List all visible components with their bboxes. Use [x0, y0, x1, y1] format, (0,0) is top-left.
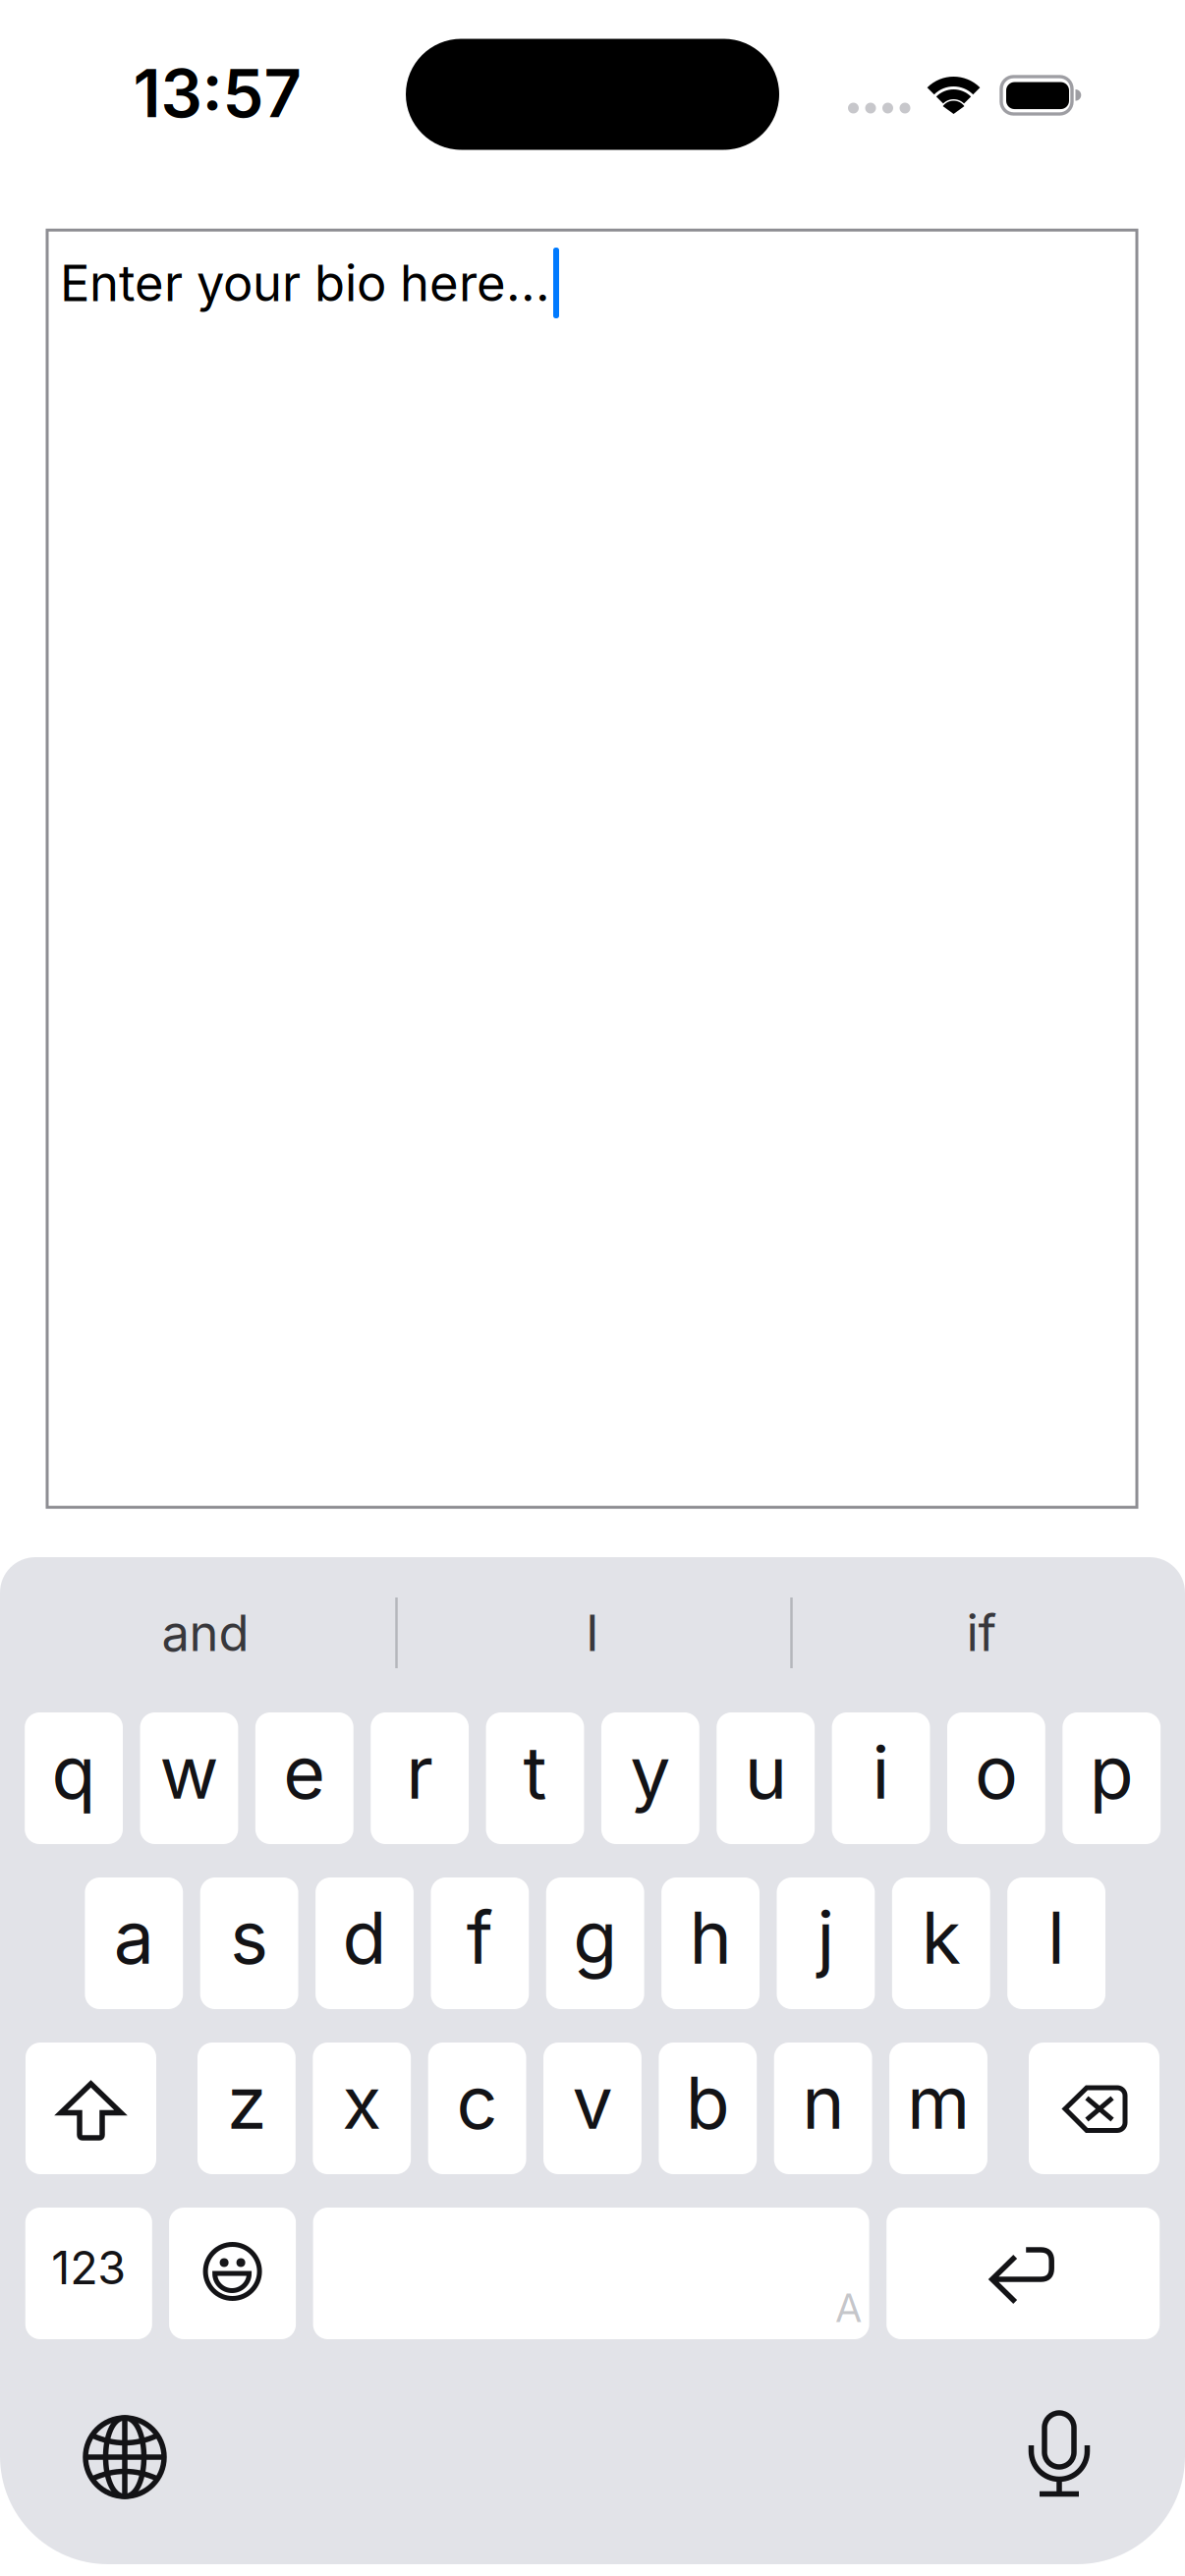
staticText: q: [52, 1729, 96, 1816]
button[interactable]: q: [25, 1712, 123, 1844]
button[interactable]: A: [313, 2208, 869, 2339]
staticText: x: [342, 2059, 381, 2146]
button[interactable]: m: [889, 2043, 987, 2174]
staticText: p: [1089, 1729, 1134, 1816]
staticText: v: [572, 2059, 613, 2146]
staticText: r: [406, 1729, 433, 1816]
staticText: w: [160, 1729, 219, 1816]
button[interactable]: and: [19, 1584, 392, 1682]
button[interactable]: [26, 2043, 156, 2174]
staticText: h: [689, 1894, 732, 1981]
button[interactable]: if: [795, 1584, 1168, 1682]
button[interactable]: y: [601, 1712, 699, 1844]
staticText: l: [1048, 1894, 1065, 1981]
staticText: o: [975, 1729, 1018, 1816]
button[interactable]: [1029, 2043, 1159, 2174]
button[interactable]: g: [546, 1877, 644, 2009]
button[interactable]: b: [659, 2043, 757, 2174]
staticText: e: [283, 1729, 326, 1816]
button[interactable]: j: [777, 1877, 875, 2009]
button[interactable]: 123: [25, 2208, 152, 2339]
staticText: t: [523, 1729, 547, 1816]
staticText: j: [817, 1894, 835, 1981]
staticText: and: [162, 1603, 249, 1663]
button[interactable]: [886, 2208, 1160, 2339]
button[interactable]: u: [717, 1712, 815, 1844]
staticText: g: [573, 1894, 617, 1981]
staticText: if: [966, 1603, 997, 1663]
button[interactable]: i: [832, 1712, 930, 1844]
button[interactable]: r: [371, 1712, 469, 1844]
button[interactable]: n: [774, 2043, 872, 2174]
button[interactable]: p: [1062, 1712, 1161, 1844]
staticText: n: [802, 2059, 844, 2146]
button[interactable]: v: [543, 2043, 641, 2174]
staticText: f: [467, 1894, 493, 1981]
button[interactable]: o: [947, 1712, 1045, 1844]
staticText: 13:57: [133, 54, 301, 133]
button[interactable]: d: [316, 1877, 414, 2009]
staticText: I: [586, 1603, 599, 1663]
button[interactable]: e: [255, 1712, 353, 1844]
staticText: A: [836, 2284, 861, 2332]
button[interactable]: I: [406, 1584, 779, 1682]
staticText: Enter your bio here...: [60, 253, 550, 313]
staticText: c: [457, 2059, 498, 2146]
staticText: k: [921, 1894, 961, 1981]
staticText: i: [872, 1729, 890, 1816]
button[interactable]: c: [428, 2043, 526, 2174]
button[interactable]: t: [486, 1712, 584, 1844]
button[interactable]: x: [313, 2043, 411, 2174]
staticText: z: [227, 2059, 266, 2146]
staticText: 123: [51, 2240, 126, 2295]
button[interactable]: l: [1007, 1877, 1105, 2009]
button[interactable]: [169, 2208, 296, 2339]
staticText: m: [907, 2059, 970, 2146]
button[interactable]: s: [200, 1877, 298, 2009]
button[interactable]: k: [892, 1877, 990, 2009]
staticText: a: [114, 1894, 154, 1981]
staticText: d: [342, 1894, 387, 1981]
button[interactable]: z: [197, 2043, 296, 2174]
staticText: b: [686, 2059, 730, 2146]
button[interactable]: [0, 0, 1185, 2576]
button[interactable]: h: [661, 1877, 759, 2009]
button[interactable]: f: [431, 1877, 529, 2009]
staticText: s: [230, 1894, 268, 1981]
staticText: u: [745, 1729, 787, 1816]
staticText: y: [630, 1729, 671, 1816]
button[interactable]: w: [140, 1712, 238, 1844]
button[interactable]: a: [85, 1877, 183, 2009]
button[interactable]: [0, 0, 1185, 2576]
